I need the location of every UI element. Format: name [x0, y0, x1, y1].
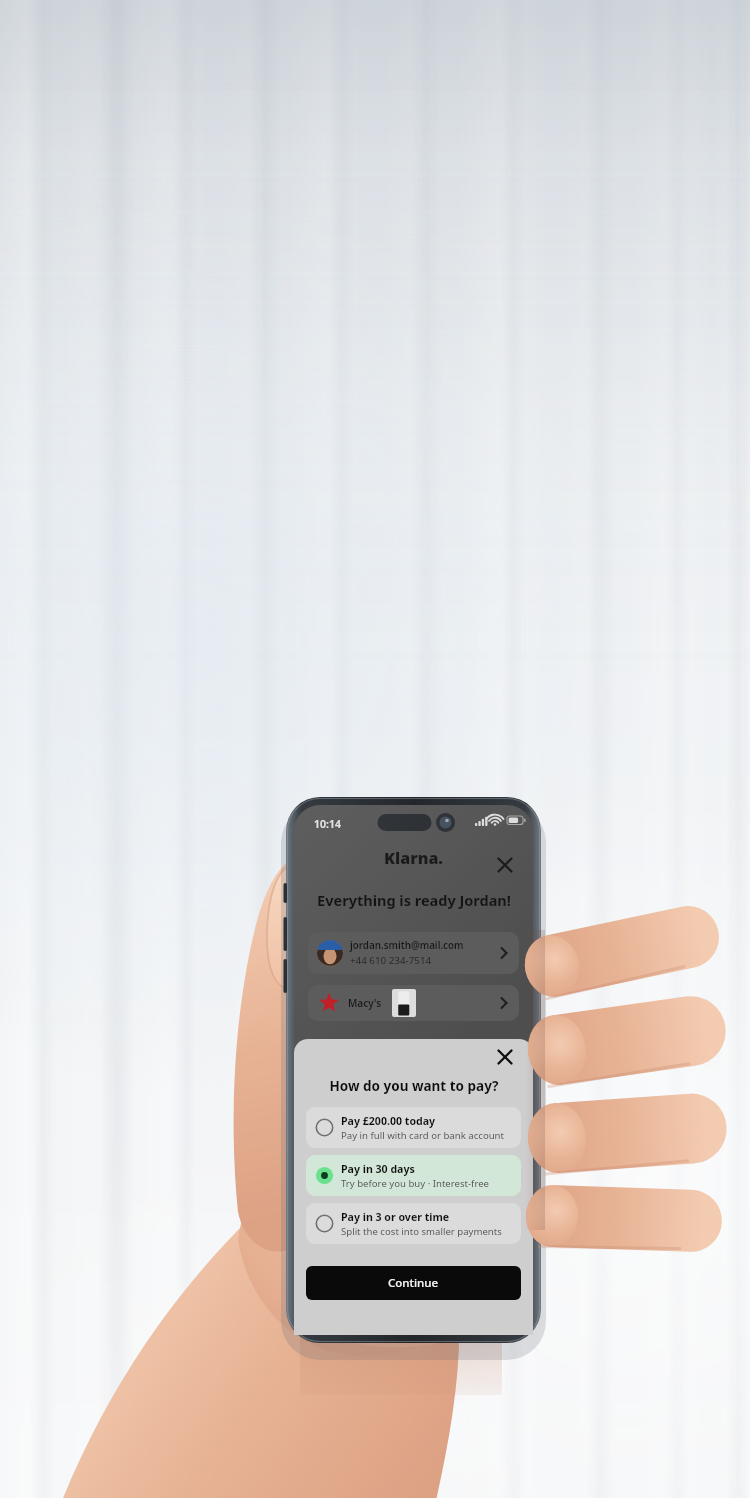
staticText: Try before you buy · Interest-free — [341, 1177, 489, 1190]
staticText: Pay in 30 days — [341, 1162, 415, 1176]
staticText: Klarna. — [384, 847, 443, 869]
staticText: How do you want to pay? — [329, 1077, 499, 1095]
staticText: Pay in 3 or over time — [341, 1210, 450, 1224]
button[interactable]: Pay in 3 or over time — [306, 1203, 521, 1244]
button[interactable]: Macy's — [308, 985, 519, 1021]
staticText: Macy's — [348, 996, 382, 1010]
button[interactable]: Continue — [306, 1266, 521, 1300]
button[interactable]: Close payment options — [495, 1047, 515, 1067]
staticText: Continue — [388, 1275, 439, 1291]
staticText: Split the cost into smaller payments — [341, 1225, 502, 1238]
staticText: Pay in full with card or bank account — [341, 1129, 505, 1142]
staticText: 10:14 — [314, 817, 341, 831]
staticText: jordan.smith@mail.com — [350, 939, 464, 952]
button[interactable]: Pay in 30 days — [306, 1155, 521, 1196]
button[interactable]: Pay £200.00 today — [306, 1107, 521, 1148]
staticText: Everything is ready Jordan! — [317, 890, 511, 910]
button[interactable]: jordan.smith@mail.com — [308, 932, 519, 974]
button[interactable]: Close checkout — [495, 855, 515, 875]
staticText: +44 610 234-7514 — [350, 954, 432, 967]
staticText: Pay £200.00 today — [341, 1114, 436, 1128]
